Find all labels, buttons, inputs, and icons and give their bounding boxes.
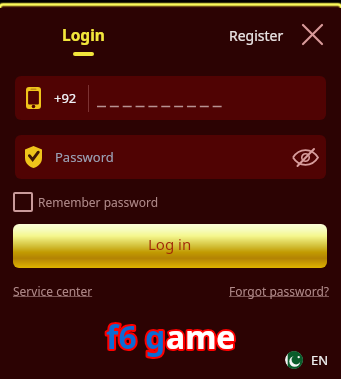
staticText: Login (62, 24, 105, 45)
staticText: ame (166, 315, 236, 359)
staticText: Password (55, 148, 114, 166)
staticText: f6 g (106, 315, 166, 359)
staticText: ame (166, 315, 236, 359)
button[interactable]: Show password (290, 142, 321, 173)
button[interactable]: Close (300, 22, 325, 47)
button[interactable]: +92 (15, 76, 326, 120)
staticText: f6 g (106, 315, 166, 359)
button[interactable]: EN (285, 351, 329, 369)
button[interactable]: Register (229, 26, 284, 45)
button[interactable]: Log in (13, 224, 327, 268)
button[interactable]: Service center (13, 283, 93, 299)
button[interactable]: Remember password (13, 192, 159, 212)
staticText: Log in (148, 234, 192, 254)
staticText: Register (229, 26, 284, 45)
button[interactable]: Login (62, 24, 105, 56)
staticText: +92 (54, 89, 77, 107)
button[interactable]: Password (15, 135, 326, 179)
button[interactable]: Forgot password? (229, 283, 330, 299)
staticText: Remember password (38, 194, 159, 210)
staticText: EN (311, 351, 329, 369)
